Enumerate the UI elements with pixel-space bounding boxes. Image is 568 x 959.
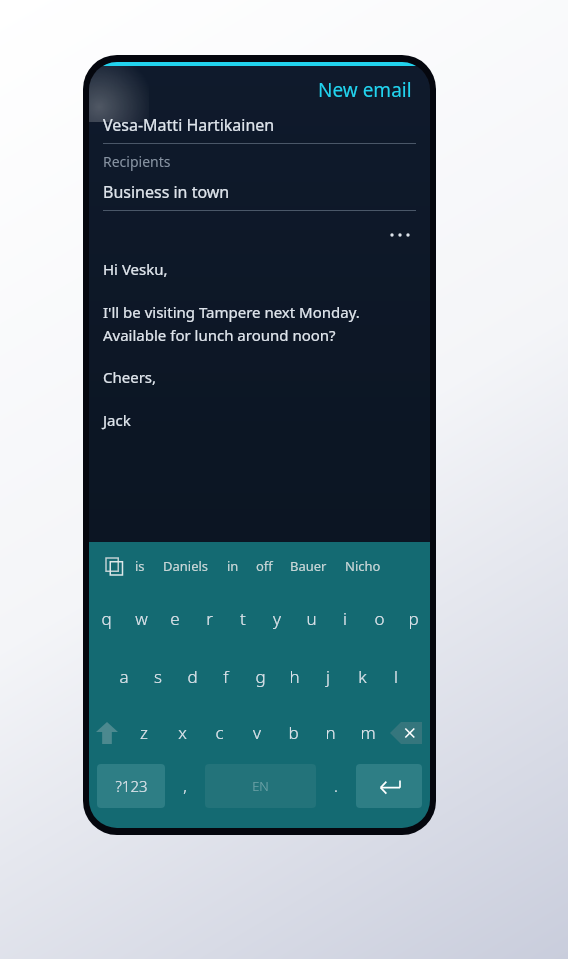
button[interactable]: g xyxy=(243,647,277,705)
button[interactable]: w xyxy=(124,589,158,647)
button[interactable]: a xyxy=(106,647,141,705)
staticText: is xyxy=(135,557,145,575)
staticText: in xyxy=(227,557,239,575)
staticText: ?123 xyxy=(115,776,148,796)
staticText: a xyxy=(119,665,129,688)
staticText: p xyxy=(408,607,419,630)
button[interactable]: New email xyxy=(314,73,416,107)
staticText: j xyxy=(326,665,330,688)
button[interactable]: c xyxy=(201,705,238,760)
button[interactable]: f xyxy=(209,647,243,705)
button[interactable]: Clipboard xyxy=(99,551,129,581)
button[interactable]: Vesa-Matti Hartikainen xyxy=(103,114,416,136)
staticText: h xyxy=(289,665,300,688)
staticText: Recipients xyxy=(103,152,171,171)
staticText: o xyxy=(374,607,385,630)
staticText: Hi Vesku, xyxy=(103,259,168,279)
button[interactable]: v xyxy=(238,705,275,760)
staticText: , xyxy=(183,775,187,797)
button[interactable]: More options xyxy=(386,221,414,249)
staticText: y xyxy=(273,607,281,630)
staticText: n xyxy=(325,721,336,744)
button[interactable]: z xyxy=(125,705,163,760)
button[interactable]: Enter xyxy=(356,764,422,808)
button[interactable]: o xyxy=(362,589,396,647)
staticText: Business in town xyxy=(103,181,230,203)
button[interactable]: Shift xyxy=(89,705,125,760)
button[interactable]: Daniels xyxy=(157,551,215,581)
staticText: k xyxy=(358,665,367,688)
button[interactable]: Bauer xyxy=(284,551,333,581)
button[interactable]: ?123 xyxy=(97,764,165,808)
button[interactable]: EN xyxy=(205,764,316,808)
button[interactable]: q xyxy=(89,589,124,647)
staticText: d xyxy=(187,665,198,688)
button[interactable]: e xyxy=(158,589,192,647)
staticText: r xyxy=(206,607,213,630)
button[interactable]: n xyxy=(312,705,349,760)
button[interactable]: b xyxy=(275,705,312,760)
button[interactable]: y xyxy=(260,589,294,647)
button[interactable]: j xyxy=(311,647,345,705)
staticText: m xyxy=(360,721,376,744)
button[interactable]: k xyxy=(345,647,379,705)
staticText: I'll be visiting Tampere next Monday. Av… xyxy=(103,302,360,345)
button[interactable]: u xyxy=(294,589,328,647)
staticText: Daniels xyxy=(163,557,209,575)
staticText: s xyxy=(154,665,162,688)
staticText: x xyxy=(178,721,187,744)
button[interactable]: d xyxy=(175,647,209,705)
button[interactable]: i xyxy=(328,589,362,647)
staticText: Vesa-Matti Hartikainen xyxy=(103,114,275,136)
button[interactable]: , xyxy=(165,764,205,808)
staticText: v xyxy=(253,721,261,744)
staticText: i xyxy=(343,607,347,630)
staticText: . xyxy=(334,775,338,797)
staticText: z xyxy=(140,721,148,744)
staticText: EN xyxy=(252,777,269,795)
staticText: g xyxy=(255,665,266,688)
staticText: off xyxy=(256,557,273,575)
staticText: l xyxy=(394,665,398,688)
staticText: b xyxy=(288,721,299,744)
button[interactable]: l xyxy=(379,647,413,705)
staticText: w xyxy=(135,607,148,630)
button[interactable]: Recipients xyxy=(103,152,416,171)
button[interactable]: r xyxy=(192,589,226,647)
staticText: New email xyxy=(318,77,412,103)
staticText: e xyxy=(170,607,180,630)
staticText: q xyxy=(101,607,112,630)
button[interactable]: is xyxy=(129,551,151,581)
staticText: Nicho xyxy=(345,557,381,575)
button[interactable]: in xyxy=(221,551,245,581)
button[interactable]: Backspace xyxy=(386,705,426,760)
button[interactable]: h xyxy=(277,647,311,705)
button[interactable]: Nicho xyxy=(339,551,387,581)
button[interactable]: . xyxy=(316,764,356,808)
staticText: Bauer xyxy=(290,557,327,575)
staticText: Cheers, xyxy=(103,367,157,387)
staticText: f xyxy=(223,665,229,688)
button[interactable]: Business in town xyxy=(103,181,416,203)
button[interactable]: x xyxy=(163,705,201,760)
button[interactable]: s xyxy=(141,647,175,705)
button[interactable]: off xyxy=(250,551,279,581)
staticText: t xyxy=(240,607,246,630)
button[interactable]: t xyxy=(226,589,260,647)
button[interactable]: p xyxy=(396,589,430,647)
staticText: u xyxy=(306,607,317,630)
button[interactable]: m xyxy=(349,705,386,760)
staticText: Jack xyxy=(103,410,131,430)
staticText: c xyxy=(215,721,224,744)
